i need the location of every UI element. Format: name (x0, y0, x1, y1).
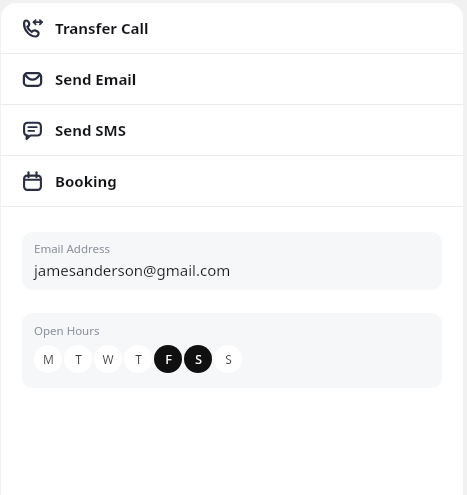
staticText: Send SMS (55, 120, 127, 140)
staticText: jamesanderson@gmail.com (34, 260, 231, 280)
staticText: S (195, 351, 202, 367)
button[interactable]: W (94, 345, 122, 373)
button[interactable]: S (214, 345, 242, 373)
staticText: Transfer Call (55, 18, 149, 38)
staticText: W (102, 351, 114, 367)
button[interactable]: T (64, 345, 92, 373)
button[interactable]: Send Email (1, 54, 463, 104)
staticText: Open Hours (34, 323, 100, 339)
staticText: T (135, 351, 142, 367)
staticText: F (165, 351, 172, 367)
staticText: M (43, 351, 54, 367)
staticText: Booking (55, 171, 117, 191)
staticText: Email Address (34, 241, 111, 257)
button[interactable]: Booking (1, 156, 463, 206)
button[interactable]: S (184, 345, 212, 373)
button[interactable]: M (34, 345, 62, 373)
button[interactable]: Email Address (22, 232, 442, 290)
button[interactable]: Send SMS (1, 105, 463, 155)
button[interactable]: T (124, 345, 152, 373)
button[interactable]: Transfer Call (1, 3, 463, 53)
button[interactable]: Open Hours (22, 313, 442, 388)
staticText: T (75, 351, 82, 367)
staticText: S (225, 351, 232, 367)
button[interactable]: F (154, 345, 182, 373)
staticText: Send Email (55, 69, 137, 89)
